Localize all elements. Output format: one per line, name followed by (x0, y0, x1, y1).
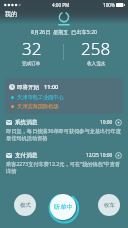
staticText: 我的 (5, 10, 17, 18)
other: Logo (56, 11, 72, 27)
staticText: 收入流水 (87, 61, 106, 67)
staticText: 模式 (20, 202, 31, 209)
button[interactable]: 系统消息 (0, 119, 128, 141)
staticText: 即日起，每日接满30单即可获得参与龙基出行年度最佳司机活动资格 (6, 127, 122, 141)
button[interactable]: 支付消息 (0, 152, 128, 174)
staticText: 10:00 (100, 119, 113, 126)
staticText: 系统消息 (15, 119, 38, 126)
button[interactable]: 听单中 (47, 191, 79, 223)
button[interactable]: 即将开始 (5, 78, 123, 114)
staticText: 完成订单 (22, 61, 41, 67)
staticText: 11:00 (44, 83, 59, 91)
staticText: 100% (103, 2, 115, 8)
staticText: 即将开始 (17, 84, 40, 91)
staticText: 12/25 10:00 (86, 152, 113, 159)
staticText: 听单中 (54, 203, 73, 211)
staticText: 乘客2273支付车费12.2元，可在“我的钱包”中查看详情 (6, 160, 122, 174)
staticText: 8月26日 星期五 已出车5:20 (31, 28, 98, 35)
staticText: 收车 (104, 202, 115, 209)
staticText: 4:00 PM (52, 2, 70, 8)
staticText: 天津滨海国际机场 (17, 103, 59, 110)
staticText: 32 (22, 37, 42, 60)
button[interactable]: 模式 (14, 194, 36, 216)
staticText: 支付消息 (15, 152, 38, 159)
staticText: 258 (81, 37, 111, 60)
staticText: 天津市电工业园中心 (17, 94, 64, 101)
button[interactable]: 收车 (98, 194, 120, 216)
